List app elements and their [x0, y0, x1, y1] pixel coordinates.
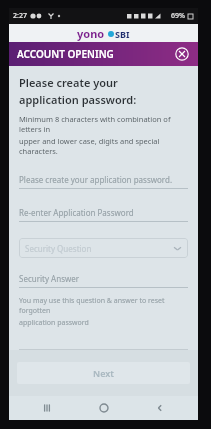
- button[interactable]: Close: [173, 45, 191, 63]
- staticText: application password:: [19, 92, 137, 107]
- staticText: 69%: [171, 11, 185, 21]
- staticText: Please create your: [19, 75, 118, 90]
- staticText: Security Answer: [19, 273, 80, 284]
- staticText: Minimum 8 characters with combination of…: [19, 114, 188, 134]
- staticText: Security Question: [25, 243, 92, 254]
- button[interactable]: Recents: [29, 396, 65, 420]
- staticText: Please create your application password.: [19, 174, 173, 185]
- button[interactable]: Security Question: [19, 238, 188, 258]
- button[interactable]: Re-enter Application Password: [19, 207, 188, 222]
- staticText: Re-enter Application Password: [19, 207, 134, 218]
- button[interactable]: Please create your application password.: [19, 174, 188, 189]
- staticText: upper and lower case, digits and special…: [19, 136, 188, 156]
- button[interactable]: Next: [17, 362, 190, 384]
- button[interactable]: Security Answer: [19, 273, 188, 288]
- button[interactable]: Back: [142, 396, 178, 420]
- staticText: 2:27: [13, 11, 27, 21]
- staticText: ACCOUNT OPENING: [17, 47, 114, 61]
- staticText: Next: [93, 367, 114, 379]
- button[interactable]: Home: [86, 396, 122, 420]
- staticText: yono: [77, 26, 105, 41]
- staticText: SBI: [115, 28, 130, 40]
- staticText: application password: [19, 318, 89, 328]
- staticText: You may use this question & answer to re…: [19, 296, 188, 316]
